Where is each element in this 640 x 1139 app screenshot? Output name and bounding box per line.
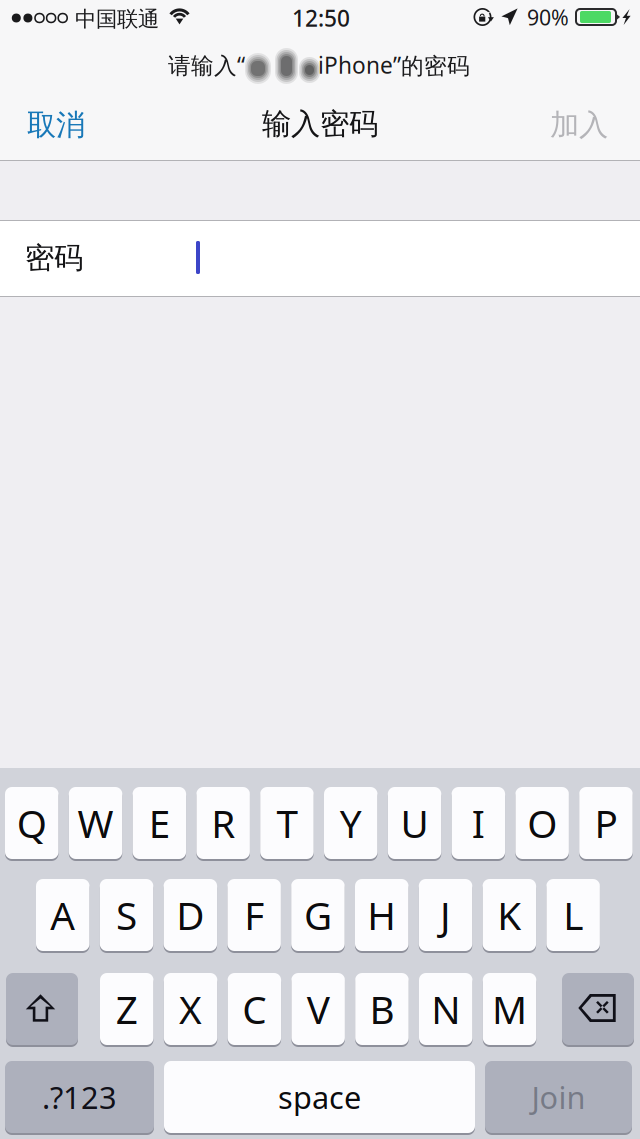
staticText: K bbox=[497, 889, 521, 941]
button[interactable]: N bbox=[419, 972, 472, 1046]
button[interactable]: E bbox=[133, 786, 186, 860]
button[interactable]: C bbox=[228, 972, 281, 1046]
staticText: N bbox=[431, 983, 460, 1035]
staticText: H bbox=[367, 889, 396, 941]
staticText: 请输入“ bbox=[168, 50, 245, 80]
staticText: 12:50 bbox=[292, 3, 350, 33]
button[interactable]: T bbox=[260, 786, 314, 860]
staticText: space bbox=[278, 1077, 361, 1117]
button[interactable]: U bbox=[388, 786, 441, 860]
button[interactable]: L bbox=[546, 878, 600, 952]
button[interactable]: P bbox=[579, 786, 633, 860]
staticText: 取消 bbox=[27, 107, 85, 143]
staticText: T bbox=[276, 797, 297, 849]
staticText: W bbox=[77, 797, 113, 849]
staticText: X bbox=[179, 983, 202, 1035]
staticText: Q bbox=[17, 797, 47, 849]
button[interactable]: V bbox=[291, 972, 345, 1046]
button[interactable]: space bbox=[164, 1060, 475, 1134]
staticText: E bbox=[149, 797, 170, 849]
staticText: U bbox=[400, 797, 428, 849]
button[interactable]: H bbox=[355, 878, 408, 952]
staticText: 90% bbox=[527, 3, 569, 31]
staticText: I bbox=[472, 797, 485, 849]
button[interactable]: W bbox=[69, 786, 122, 860]
button[interactable]: G bbox=[291, 878, 345, 952]
staticText: 中国联通 bbox=[75, 6, 159, 32]
staticText: C bbox=[242, 983, 266, 1035]
staticText: M bbox=[492, 983, 527, 1035]
button[interactable]: J bbox=[419, 878, 472, 952]
button[interactable]: Delete bbox=[562, 972, 634, 1046]
button[interactable]: X bbox=[164, 972, 217, 1046]
staticText: 加入 bbox=[550, 107, 608, 143]
button[interactable]: D bbox=[164, 878, 217, 952]
button[interactable]: .?123 bbox=[5, 1060, 154, 1134]
staticText: V bbox=[307, 983, 330, 1035]
button[interactable]: M bbox=[483, 972, 536, 1046]
button[interactable]: Y bbox=[324, 786, 377, 860]
button[interactable]: 加入 bbox=[523, 96, 635, 154]
button[interactable]: R bbox=[196, 786, 250, 860]
staticText: P bbox=[594, 797, 617, 849]
staticText: iPhone”的密码 bbox=[318, 50, 470, 80]
staticText: Join bbox=[531, 1077, 585, 1117]
button[interactable]: Z bbox=[100, 972, 153, 1046]
staticText: J bbox=[440, 889, 451, 941]
staticText: O bbox=[527, 797, 557, 849]
staticText: .?123 bbox=[42, 1077, 117, 1117]
button[interactable]: A bbox=[36, 878, 89, 952]
staticText: B bbox=[369, 983, 394, 1035]
staticText: R bbox=[211, 797, 235, 849]
staticText: 密码 bbox=[25, 240, 83, 276]
button[interactable]: F bbox=[227, 878, 281, 952]
button[interactable]: S bbox=[100, 878, 153, 952]
button[interactable]: Shift bbox=[6, 972, 78, 1046]
staticText: F bbox=[244, 889, 264, 941]
button[interactable]: O bbox=[515, 786, 569, 860]
staticText: G bbox=[304, 889, 332, 941]
button[interactable]: Q bbox=[5, 786, 58, 860]
button[interactable]: 密码 bbox=[0, 221, 640, 296]
staticText: A bbox=[50, 889, 75, 941]
button[interactable]: B bbox=[355, 972, 409, 1046]
staticText: D bbox=[176, 889, 204, 941]
button[interactable]: Join bbox=[485, 1060, 632, 1134]
staticText: Y bbox=[340, 797, 362, 849]
staticText: S bbox=[116, 889, 137, 941]
button[interactable]: 取消 bbox=[0, 96, 112, 154]
staticText: 输入密码 bbox=[262, 106, 378, 142]
staticText: Z bbox=[116, 983, 138, 1035]
button[interactable]: K bbox=[483, 878, 536, 952]
button[interactable]: I bbox=[452, 786, 505, 860]
staticText: L bbox=[563, 889, 583, 941]
